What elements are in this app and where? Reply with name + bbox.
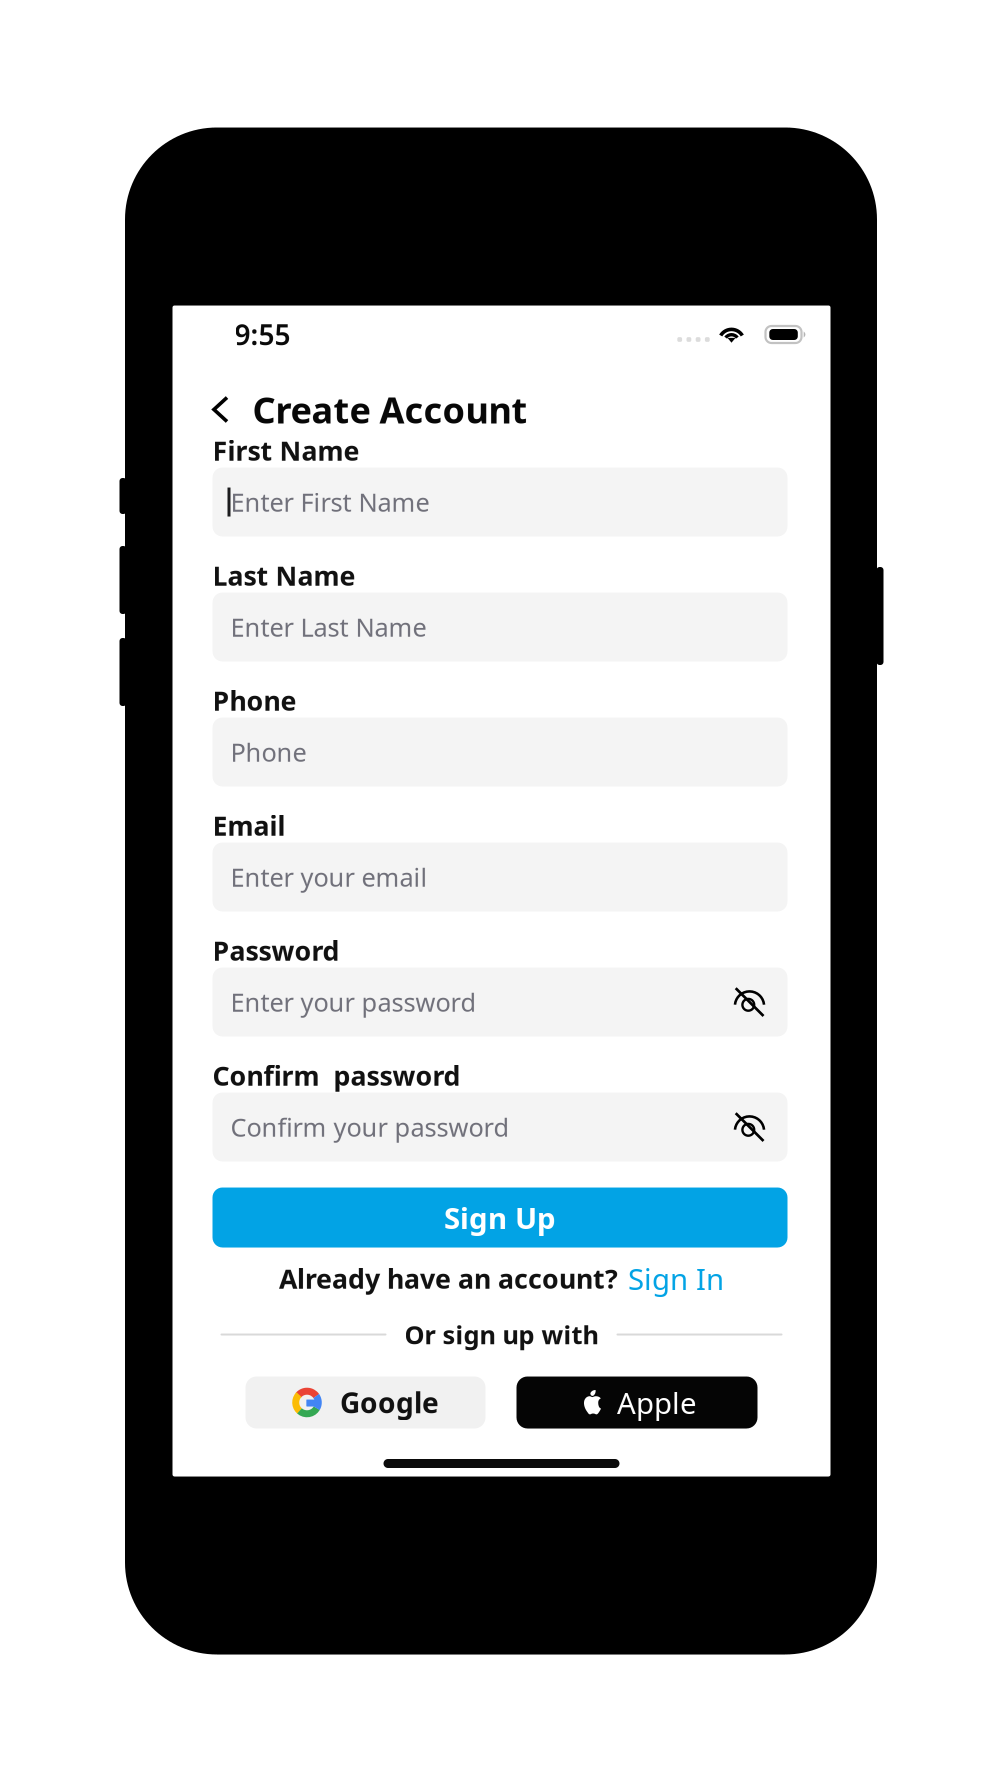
staticText: Phone [230, 735, 306, 769]
staticText: First Name [212, 433, 359, 468]
staticText: Confirm password [212, 1058, 460, 1093]
staticText: Password [212, 933, 339, 968]
staticText: Already have an account? [279, 1261, 618, 1296]
staticText: Enter Last Name [230, 610, 426, 644]
staticText: Create Account [252, 386, 527, 433]
button[interactable]: Sign Up [212, 1187, 787, 1247]
staticText: Confirm your password [230, 1110, 509, 1144]
staticText: Sign Up [444, 1198, 556, 1237]
staticText: Enter First Name [230, 485, 429, 519]
button[interactable]: Already have an account? [279, 1258, 724, 1298]
button[interactable]: Enter First Name [212, 467, 787, 536]
staticText: Apple [617, 1383, 697, 1422]
staticText: Enter your email [230, 860, 427, 894]
button[interactable]: Apple [516, 1376, 757, 1428]
staticText: Or sign up with [404, 1318, 598, 1351]
button[interactable]: Enter your password [212, 967, 787, 1036]
staticText: 9:55 [234, 316, 290, 353]
button[interactable]: Google [245, 1376, 485, 1428]
button[interactable]: Phone [212, 717, 787, 786]
staticText: Enter your password [230, 985, 476, 1019]
button[interactable]: Enter Last Name [212, 592, 787, 661]
staticText: Email [212, 808, 285, 843]
staticText: Google [340, 1384, 439, 1421]
button[interactable]: Back [200, 387, 240, 431]
staticText: Sign In [628, 1259, 724, 1298]
button[interactable]: Confirm your password [212, 1092, 787, 1161]
staticText: Last Name [212, 558, 355, 593]
button[interactable]: Enter your email [212, 842, 787, 911]
staticText: Phone [212, 683, 296, 718]
